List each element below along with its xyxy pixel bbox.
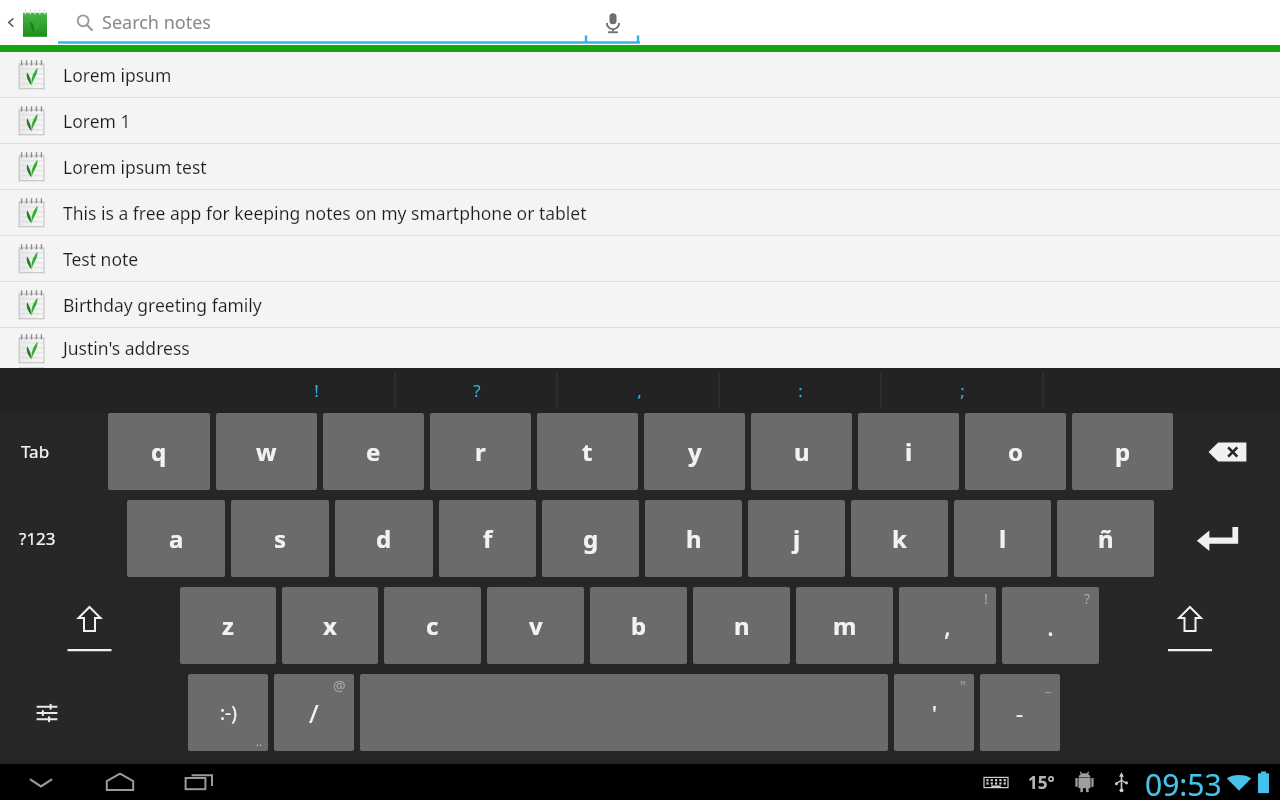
- button[interactable]: Back: [0, 0, 20, 45]
- button[interactable]: !: [296, 368, 336, 413]
- button[interactable]: Hide keyboard: [16, 764, 66, 800]
- button[interactable]: Birthday greeting family: [0, 282, 1280, 327]
- staticText: ?123: [19, 527, 56, 550]
- staticText: :: [798, 379, 803, 402]
- button[interactable]: ,: [619, 368, 659, 413]
- button[interactable]: x: [282, 587, 378, 664]
- button[interactable]: ñ: [1057, 500, 1154, 577]
- staticText: .: [1047, 608, 1054, 643]
- staticText: c: [426, 609, 439, 642]
- button[interactable]: f: [439, 500, 536, 577]
- staticText: g: [583, 522, 599, 555]
- button[interactable]: t: [537, 413, 638, 490]
- button[interactable]: Recent apps: [175, 764, 225, 800]
- button[interactable]: i: [858, 413, 959, 490]
- staticText: ?: [1084, 589, 1091, 608]
- staticText: j: [793, 522, 801, 555]
- button[interactable]: Justin's address: [0, 328, 1280, 368]
- staticText: ": [960, 676, 966, 695]
- button[interactable]: Tab: [5, 413, 102, 490]
- staticText: Justin's address: [63, 336, 190, 360]
- staticText: k: [892, 522, 907, 555]
- button[interactable]: m: [796, 587, 893, 664]
- staticText: This is a free app for keeping notes on …: [63, 201, 587, 225]
- staticText: Search notes: [102, 10, 211, 35]
- staticText: Lorem 1: [63, 109, 131, 133]
- staticText: ..: [256, 734, 262, 749]
- button[interactable]: r: [430, 413, 531, 490]
- button[interactable]: q: [108, 413, 210, 490]
- staticText: 09:53: [1145, 764, 1222, 800]
- staticText: Test note: [63, 247, 139, 271]
- button[interactable]: Enter: [1160, 500, 1275, 577]
- button[interactable]: ,: [899, 587, 996, 664]
- staticText: m: [833, 609, 857, 642]
- staticText: x: [323, 609, 337, 642]
- button[interactable]: :-): [188, 674, 268, 751]
- button[interactable]: h: [645, 500, 742, 577]
- button[interactable]: c: [384, 587, 481, 664]
- button[interactable]: Home: [95, 764, 145, 800]
- button[interactable]: Notes app: [18, 6, 52, 40]
- staticText: r: [475, 435, 486, 468]
- button[interactable]: p: [1072, 413, 1173, 490]
- button[interactable]: v: [487, 587, 584, 664]
- staticText: v: [529, 609, 543, 642]
- button[interactable]: k: [851, 500, 948, 577]
- staticText: a: [169, 522, 184, 555]
- button[interactable]: ': [894, 674, 974, 751]
- button[interactable]: u: [751, 413, 852, 490]
- button[interactable]: /: [274, 674, 354, 751]
- button[interactable]: n: [693, 587, 790, 664]
- button[interactable]: Lorem 1: [0, 98, 1280, 143]
- staticText: ,: [637, 379, 642, 402]
- button[interactable]: l: [954, 500, 1051, 577]
- staticText: b: [631, 609, 647, 642]
- button[interactable]: Lorem ipsum: [0, 52, 1280, 97]
- staticText: y: [688, 435, 702, 468]
- staticText: n: [734, 609, 750, 642]
- button[interactable]: ?: [457, 368, 497, 413]
- staticText: Tab: [21, 440, 50, 463]
- button[interactable]: j: [748, 500, 845, 577]
- staticText: ,: [944, 608, 951, 643]
- staticText: ?: [473, 379, 481, 402]
- button[interactable]: z: [180, 587, 276, 664]
- button[interactable]: Test note: [0, 236, 1280, 281]
- staticText: l: [999, 522, 1007, 555]
- button[interactable]: a: [127, 500, 225, 577]
- button[interactable]: y: [644, 413, 745, 490]
- button[interactable]: Shift: [5, 587, 174, 664]
- button[interactable]: Voice search: [588, 0, 638, 45]
- button[interactable]: This is a free app for keeping notes on …: [0, 190, 1280, 235]
- staticText: w: [256, 435, 277, 468]
- button[interactable]: e: [323, 413, 424, 490]
- button[interactable]: Shift: [1105, 587, 1275, 664]
- button[interactable]: d: [335, 500, 433, 577]
- button[interactable]: ?123: [5, 500, 121, 577]
- staticText: e: [366, 435, 381, 468]
- staticText: o: [1008, 435, 1023, 468]
- button[interactable]: Backspace: [1179, 413, 1275, 490]
- staticText: /: [309, 695, 319, 730]
- button[interactable]: -: [980, 674, 1060, 751]
- staticText: s: [274, 522, 287, 555]
- button[interactable]: o: [965, 413, 1066, 490]
- button[interactable]: b: [590, 587, 687, 664]
- button[interactable]: Search notes: [60, 0, 588, 45]
- button[interactable]: :: [780, 368, 820, 413]
- button[interactable]: Keyboard settings: [5, 674, 88, 751]
- staticText: i: [905, 435, 913, 468]
- button[interactable]: g: [542, 500, 639, 577]
- button[interactable]: s: [231, 500, 329, 577]
- button[interactable]: ;: [942, 368, 982, 413]
- button[interactable]: Lorem ipsum test: [0, 144, 1280, 189]
- button[interactable]: .: [1002, 587, 1099, 664]
- button[interactable]: w: [216, 413, 317, 490]
- staticText: :-): [220, 700, 237, 726]
- staticText: d: [376, 522, 392, 555]
- staticText: ñ: [1098, 522, 1114, 555]
